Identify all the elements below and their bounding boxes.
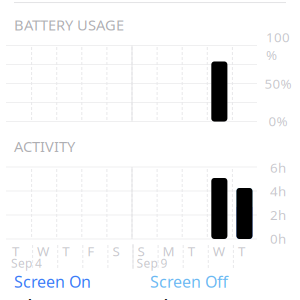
button[interactable]: Screen On <box>14 271 134 300</box>
staticText: 100% <box>242 0 286 3</box>
staticText: 100% <box>266 28 290 64</box>
staticText: W <box>37 242 49 260</box>
staticText: 0h <box>270 230 286 247</box>
staticText: Sep 4 <box>11 255 42 271</box>
staticText: T <box>62 242 69 260</box>
button[interactable]: Screen Off <box>150 271 270 300</box>
staticText: Screen On <box>14 271 91 292</box>
staticText: BATTERY USAGE <box>14 15 124 34</box>
staticText: W <box>213 242 225 260</box>
staticText: S <box>112 242 119 260</box>
staticText: F <box>87 242 94 260</box>
staticText: T <box>188 242 195 260</box>
staticText: 2h <box>270 206 286 224</box>
staticText: 0% <box>268 112 287 130</box>
staticText: Sep 9 <box>136 255 167 271</box>
staticText: 6h <box>270 159 286 176</box>
staticText: 2h 49m <box>14 293 94 300</box>
staticText: 7:15 AM <box>14 0 81 3</box>
staticText: 50% <box>264 75 291 92</box>
staticText: T <box>12 242 19 260</box>
staticText: S <box>137 242 144 260</box>
staticText: Screen Off <box>150 271 228 292</box>
staticText: T <box>238 242 245 260</box>
staticText: M <box>163 242 175 260</box>
staticText: ACTIVITY <box>14 136 75 156</box>
staticText: 4h <box>270 182 286 200</box>
staticText: 1h 29m <box>150 293 230 300</box>
